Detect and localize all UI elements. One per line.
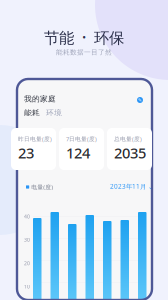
staticText: 能耗数据一目了然: [56, 48, 112, 56]
button[interactable]: 环境: [46, 108, 62, 118]
staticText: 7日电量(度): [66, 135, 97, 143]
staticText: 10: [24, 283, 30, 290]
button[interactable]: 2023年11月 ⌄: [110, 182, 153, 191]
staticText: 30: [24, 236, 30, 243]
staticText: 2023年11月 ⌄: [110, 182, 153, 191]
button[interactable]: 总电量(度): [107, 128, 152, 170]
staticText: 23: [18, 143, 34, 163]
button[interactable]: 昨日电量(度): [11, 128, 56, 170]
staticText: 环境: [46, 108, 62, 118]
button[interactable]: Edit home: [136, 96, 144, 104]
staticText: 2035: [114, 143, 146, 163]
button[interactable]: 7日电量(度): [59, 128, 104, 170]
staticText: 电量(度): [29, 183, 53, 191]
staticText: 节能 · 环保: [44, 27, 124, 48]
staticText: 40: [24, 213, 30, 220]
staticText: 昨日电量(度): [18, 135, 52, 143]
staticText: 124: [66, 143, 90, 163]
staticText: 总电量(度): [114, 135, 142, 143]
staticText: 能耗: [24, 108, 40, 118]
staticText: ✎: [138, 97, 142, 103]
staticText: 我的家庭: [24, 94, 56, 104]
button[interactable]: 能耗: [24, 108, 40, 118]
staticText: 20: [24, 260, 30, 267]
